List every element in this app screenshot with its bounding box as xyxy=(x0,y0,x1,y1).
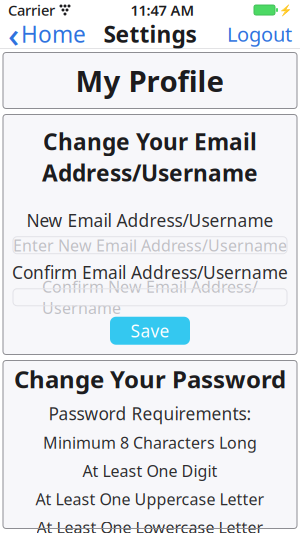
staticText: Change Your Password xyxy=(14,363,286,395)
staticText: Change Your Email xyxy=(43,126,257,157)
staticText: My Profile xyxy=(75,61,224,100)
staticText: At Least One Uppercase Letter xyxy=(35,488,264,510)
staticText: Password Requirements: xyxy=(48,402,251,425)
button[interactable]: My Profile xyxy=(3,52,297,108)
staticText: At Least One Lowercase Letter xyxy=(36,517,263,533)
staticText: Confirm New Email Address/Username xyxy=(42,276,258,318)
staticText: Save xyxy=(130,319,169,342)
staticText: ‹ xyxy=(8,11,19,57)
button[interactable]: Logout xyxy=(219,21,300,47)
staticText: Enter New Email Address/Username xyxy=(13,235,287,256)
staticText: At Least One Digit xyxy=(82,460,217,481)
staticText: Address/Username xyxy=(42,158,258,188)
staticText: Settings xyxy=(103,19,196,49)
staticText: Home xyxy=(21,19,86,49)
staticText: New Email Address/Username xyxy=(26,209,273,232)
staticText: ⚡ xyxy=(279,4,292,16)
staticText: Carrier xyxy=(8,0,55,20)
staticText: Confirm Email Address/Username xyxy=(12,261,288,284)
button[interactable]: ‹ xyxy=(0,21,94,47)
button[interactable]: Save xyxy=(110,317,190,345)
staticText: 11:47 AM xyxy=(130,0,194,20)
staticText: Minimum 8 Characters Long xyxy=(43,432,257,453)
staticText: Logout xyxy=(227,21,292,47)
